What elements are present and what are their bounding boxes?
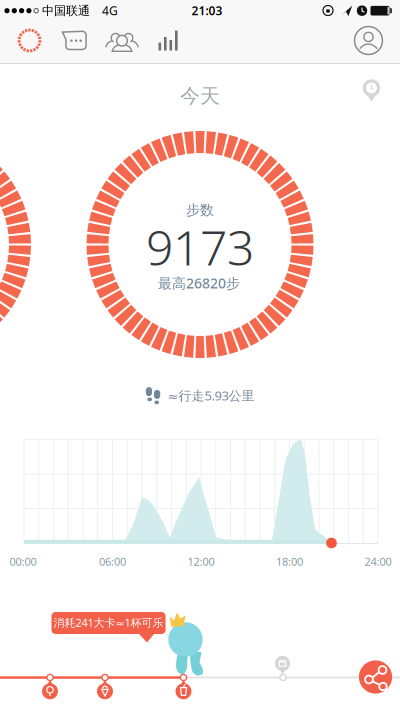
staticText: 18:00 [276,554,303,569]
button[interactable]: Profile [353,25,383,55]
button[interactable]: Messages [61,30,87,50]
staticText: 中国联通 [42,3,90,18]
button[interactable]: Share [358,660,392,694]
staticText: 步数 [186,201,214,219]
staticText: 最高26820步 [158,274,240,292]
staticText: 消耗241大卡≈1杯可乐 [53,615,163,630]
button[interactable]: Reward vegetable [39,672,61,700]
staticText: 21:03 [191,2,222,18]
staticText: 06:00 [99,554,126,569]
staticText: 00:00 [9,554,36,569]
button[interactable]: Steps [17,28,41,52]
staticText: 9173 [146,215,254,279]
button[interactable]: History [361,79,381,103]
staticText: 今天 [180,84,220,108]
button[interactable]: Reward ice cream [94,672,116,700]
staticText: ≈行走5.93公里 [167,387,254,404]
button[interactable]: Rankings [158,30,178,50]
staticText: 24:00 [364,554,391,569]
button[interactable]: Friends [105,30,139,52]
staticText: 12:00 [187,554,214,569]
button[interactable]: Reward cola [172,672,194,700]
staticText: 4G [102,3,118,19]
